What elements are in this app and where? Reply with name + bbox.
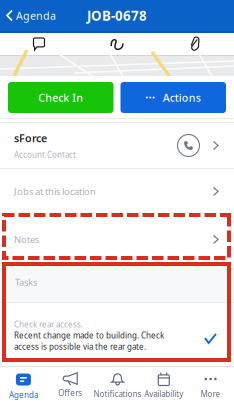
button[interactable]: Messages xyxy=(0,33,78,55)
button[interactable]: Check In xyxy=(8,82,113,113)
button[interactable]: Agenda xyxy=(0,0,62,31)
button[interactable]: Actions xyxy=(120,82,226,113)
staticText: access is possible via the rear gate. xyxy=(14,341,146,352)
button[interactable]: Signature xyxy=(78,33,156,55)
button[interactable]: Notes xyxy=(0,214,234,265)
staticText: Actions xyxy=(163,90,201,105)
staticText: Tasks xyxy=(15,276,37,288)
staticText: Jobs at this location xyxy=(14,185,96,198)
staticText: Account Contact xyxy=(14,149,76,160)
staticText: Agenda xyxy=(9,389,38,400)
staticText: More xyxy=(201,388,221,399)
button[interactable]: Attachments xyxy=(156,33,234,55)
button[interactable]: Jobs at this location xyxy=(0,169,234,214)
button[interactable]: Notifications xyxy=(94,366,140,402)
staticText: Notes xyxy=(14,233,39,246)
staticText: Availability xyxy=(144,388,183,399)
button[interactable]: sForce xyxy=(0,123,234,168)
button[interactable]: Availability xyxy=(140,366,187,402)
button[interactable]: More xyxy=(187,366,234,402)
staticText: Check rear access. xyxy=(14,319,83,330)
button[interactable]: Agenda xyxy=(0,366,47,402)
staticText: Notifications xyxy=(94,388,142,399)
staticText: sForce xyxy=(14,131,47,145)
staticText: Check In xyxy=(38,90,83,105)
staticText: Recent change made to building. Check xyxy=(14,330,164,341)
staticText: JOB-0678 xyxy=(87,7,147,24)
button[interactable]: Check rear access. xyxy=(0,303,234,357)
staticText: Offers xyxy=(58,387,82,398)
staticText: Agenda xyxy=(16,8,56,23)
button[interactable]: Offers xyxy=(47,366,94,402)
